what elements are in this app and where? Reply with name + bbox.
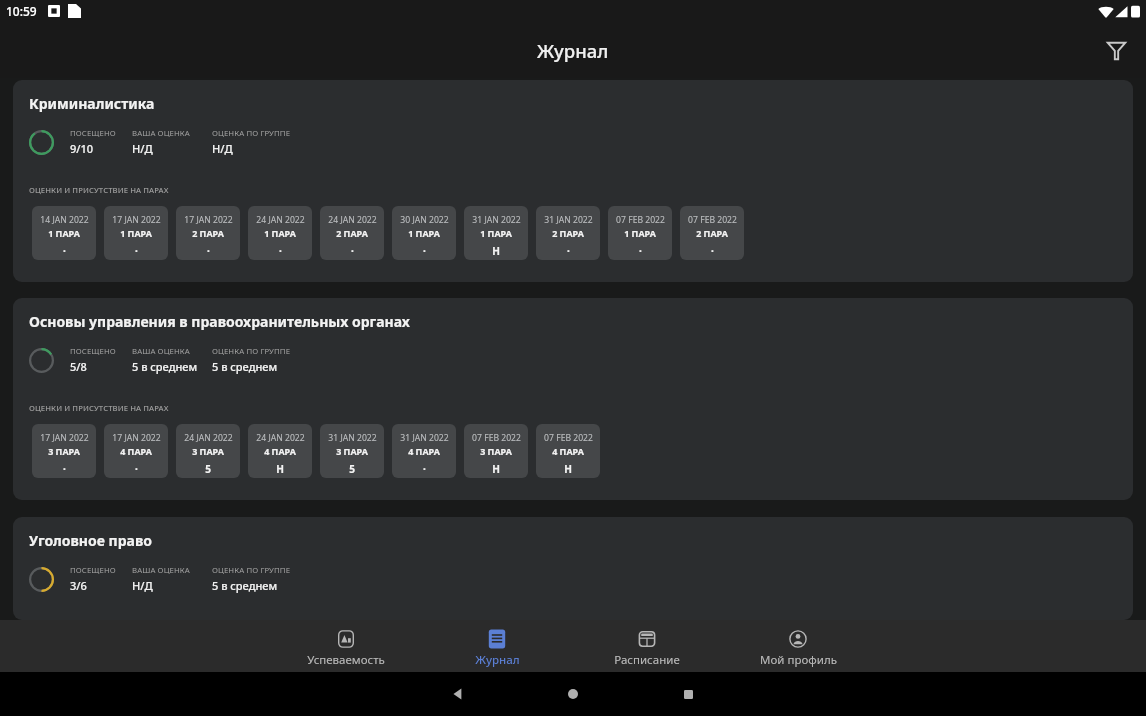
staticText: 3 ПАРА <box>336 445 368 457</box>
staticText: 10:59 <box>6 3 37 19</box>
button[interactable]: 24 JAN 2022 <box>248 206 312 260</box>
button[interactable]: 31 JAN 2022 <box>320 424 384 478</box>
button[interactable]: Журнал <box>422 622 572 671</box>
staticText: ВАША ОЦЕНКА <box>132 346 190 357</box>
button[interactable]: Последние приложения <box>668 674 708 714</box>
staticText: 1 ПАРА <box>480 227 512 239</box>
button[interactable]: Криминалистика <box>13 80 1133 282</box>
staticText: 07 FEB 2022 <box>688 214 737 226</box>
button[interactable]: 31 JAN 2022 <box>464 206 528 260</box>
staticText: ПОСЕЩЕНО <box>70 128 116 139</box>
staticText: ОЦЕНКА ПО ГРУППЕ <box>212 346 291 357</box>
staticText: Н <box>492 462 500 476</box>
staticText: Н <box>276 462 284 476</box>
staticText: 5/8 <box>70 359 87 374</box>
staticText: 17 JAN 2022 <box>112 432 161 444</box>
button[interactable]: 17 JAN 2022 <box>104 424 168 478</box>
button[interactable]: 24 JAN 2022 <box>320 206 384 260</box>
staticText: 2 ПАРА <box>552 227 584 239</box>
staticText: Мой профиль <box>760 652 837 668</box>
button[interactable]: Расписание <box>572 622 722 671</box>
staticText: · <box>279 244 282 258</box>
button[interactable]: 17 JAN 2022 <box>104 206 168 260</box>
staticText: 1 ПАРА <box>48 227 80 239</box>
button[interactable]: Уголовное право <box>13 517 1133 620</box>
staticText: · <box>567 244 570 258</box>
staticText: 2 ПАРА <box>696 227 728 239</box>
button[interactable]: 07 FEB 2022 <box>536 424 600 478</box>
staticText: ПОСЕЩЕНО <box>70 346 116 357</box>
button[interactable]: 14 JAN 2022 <box>32 206 96 260</box>
staticText: 31 JAN 2022 <box>472 214 521 226</box>
staticText: ВАША ОЦЕНКА <box>132 565 190 576</box>
staticText: 4 ПАРА <box>264 445 296 457</box>
staticText: ПОСЕЩЕНО <box>70 565 116 576</box>
staticText: 5 <box>349 462 355 476</box>
staticText: 3 ПАРА <box>48 445 80 457</box>
staticText: 24 JAN 2022 <box>328 214 377 226</box>
staticText: 24 JAN 2022 <box>256 432 305 444</box>
staticText: 3 ПАРА <box>192 445 224 457</box>
staticText: 9/10 <box>70 141 94 156</box>
staticText: 1 ПАРА <box>624 227 656 239</box>
staticText: 1 ПАРА <box>408 227 440 239</box>
button[interactable]: Фильтр <box>1096 30 1136 70</box>
staticText: 5 <box>205 462 211 476</box>
staticText: Успеваемость <box>307 652 385 668</box>
button[interactable]: 07 FEB 2022 <box>680 206 744 260</box>
staticText: 1 ПАРА <box>120 227 152 239</box>
staticText: 5 в среднем <box>212 578 278 593</box>
staticText: 4 ПАРА <box>552 445 584 457</box>
staticText: · <box>639 244 642 258</box>
button[interactable]: Назад <box>438 674 478 714</box>
staticText: Н/Д <box>132 141 153 156</box>
staticText: 17 JAN 2022 <box>112 214 161 226</box>
staticText: 24 JAN 2022 <box>184 432 233 444</box>
staticText: 07 FEB 2022 <box>544 432 593 444</box>
staticText: Н/Д <box>212 141 233 156</box>
staticText: 31 JAN 2022 <box>328 432 377 444</box>
staticText: · <box>63 462 66 476</box>
button[interactable]: 07 FEB 2022 <box>608 206 672 260</box>
staticText: Н <box>492 244 500 258</box>
button[interactable]: 31 JAN 2022 <box>392 424 456 478</box>
staticText: 31 JAN 2022 <box>400 432 449 444</box>
button[interactable]: Успеваемость <box>271 622 421 671</box>
button[interactable]: 17 JAN 2022 <box>32 424 96 478</box>
staticText: Расписание <box>614 652 680 668</box>
button[interactable]: 17 JAN 2022 <box>176 206 240 260</box>
staticText: Журнал <box>537 38 609 63</box>
staticText: 2 ПАРА <box>192 227 224 239</box>
staticText: ОЦЕНКА ПО ГРУППЕ <box>212 565 291 576</box>
button[interactable]: Главная <box>553 674 593 714</box>
staticText: Уголовное право <box>29 531 152 550</box>
staticText: Н <box>564 462 572 476</box>
button[interactable]: 24 JAN 2022 <box>248 424 312 478</box>
staticText: 5 в среднем <box>212 359 278 374</box>
staticText: 2 ПАРА <box>336 227 368 239</box>
button[interactable]: 24 JAN 2022 <box>176 424 240 478</box>
staticText: · <box>423 244 426 258</box>
button[interactable]: 31 JAN 2022 <box>536 206 600 260</box>
staticText: · <box>63 244 66 258</box>
staticText: Основы управления в правоохранительных о… <box>29 312 410 331</box>
staticText: Криминалистика <box>29 94 155 113</box>
button[interactable]: Основы управления в правоохранительных о… <box>13 298 1133 500</box>
button[interactable]: 07 FEB 2022 <box>464 424 528 478</box>
button[interactable]: 30 JAN 2022 <box>392 206 456 260</box>
staticText: · <box>711 244 714 258</box>
staticText: 07 FEB 2022 <box>616 214 665 226</box>
staticText: 5 в среднем <box>132 359 198 374</box>
staticText: 4 ПАРА <box>408 445 440 457</box>
staticText: 17 JAN 2022 <box>40 432 89 444</box>
staticText: · <box>351 244 354 258</box>
staticText: 4 ПАРА <box>120 445 152 457</box>
staticText: 24 JAN 2022 <box>256 214 305 226</box>
staticText: ОЦЕНКИ И ПРИСУТСТВИЕ НА ПАРАХ <box>29 185 169 195</box>
staticText: ВАША ОЦЕНКА <box>132 128 190 139</box>
staticText: 30 JAN 2022 <box>400 214 449 226</box>
staticText: Журнал <box>475 652 520 668</box>
staticText: 1 ПАРА <box>264 227 296 239</box>
staticText: 31 JAN 2022 <box>544 214 593 226</box>
button[interactable]: Мой профиль <box>723 622 873 671</box>
